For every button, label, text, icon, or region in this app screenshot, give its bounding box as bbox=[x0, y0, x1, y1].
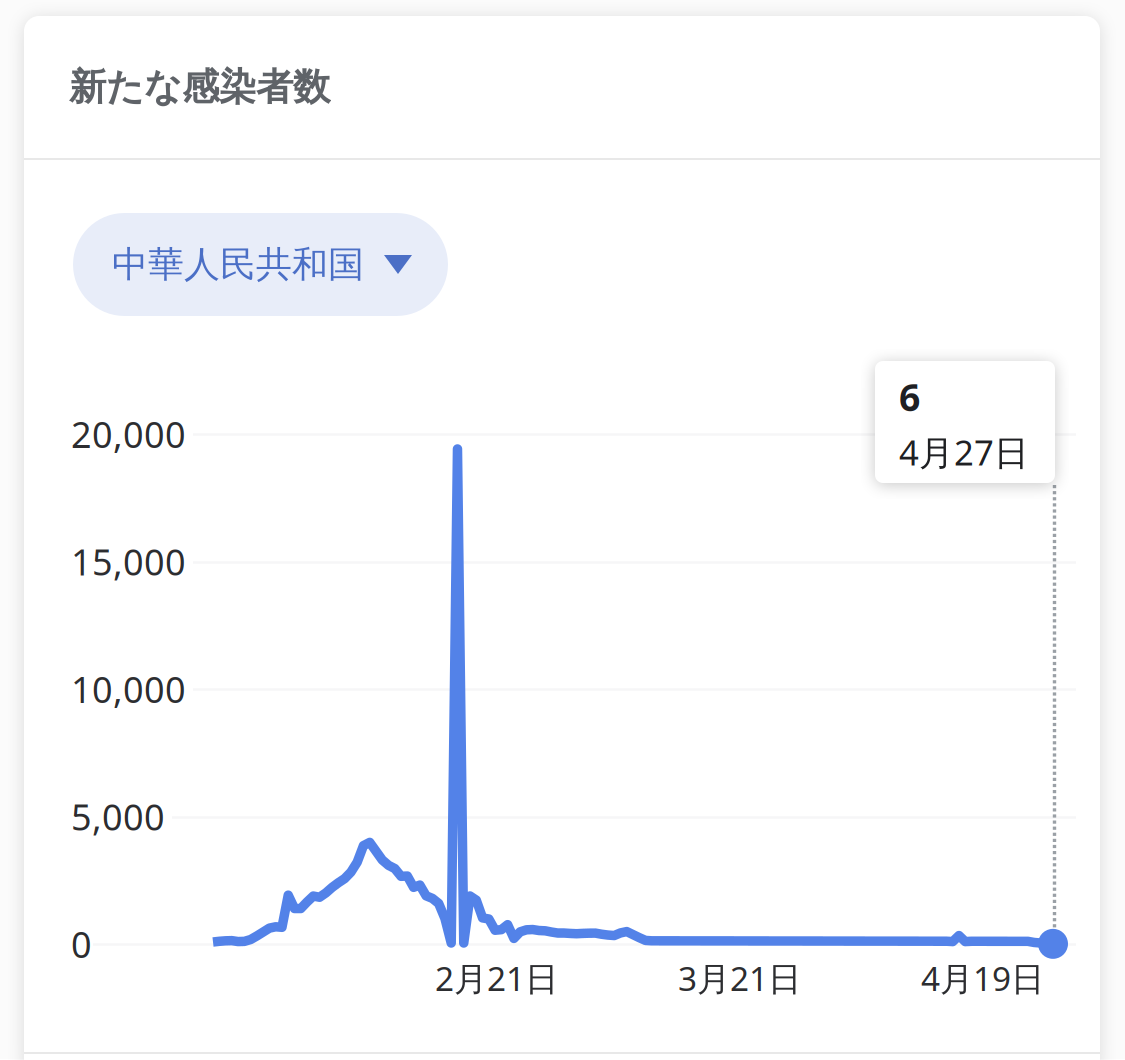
staticText: 6 bbox=[899, 372, 920, 422]
staticText: 中華人民共和国 bbox=[112, 242, 364, 287]
staticText: 2月21日 bbox=[435, 956, 558, 1000]
staticText: 4月19日 bbox=[921, 956, 1044, 1000]
button[interactable]: 中華人民共和国 bbox=[73, 213, 448, 316]
staticText: 4月27日 bbox=[899, 429, 1029, 475]
staticText: 20,000 bbox=[71, 410, 186, 458]
staticText: 新たな感染者数 bbox=[69, 64, 330, 110]
staticText: 3月21日 bbox=[678, 956, 801, 1000]
staticText: 10,000 bbox=[71, 665, 186, 713]
staticText: 15,000 bbox=[71, 538, 186, 585]
staticText: 5,000 bbox=[71, 793, 165, 840]
staticText: 0 bbox=[71, 920, 92, 968]
